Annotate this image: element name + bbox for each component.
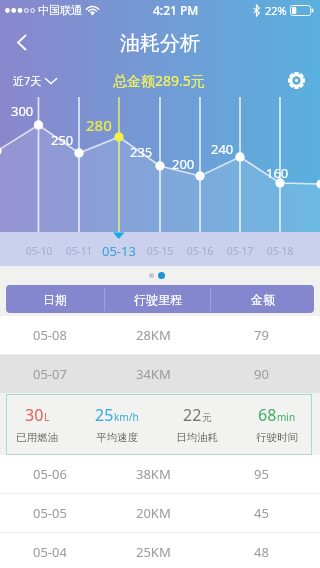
staticText: 中国联通 — [38, 3, 82, 17]
staticText: 95 — [254, 465, 269, 483]
staticText: 05-05 — [33, 504, 67, 522]
staticText: 05-08 — [33, 326, 67, 344]
staticText: 05-18 — [267, 244, 294, 258]
staticText: 05-06 — [33, 465, 67, 483]
staticText: min — [277, 410, 296, 424]
staticText: 38KM — [136, 465, 171, 483]
staticText: 05-17 — [227, 244, 254, 258]
staticText: 05-16 — [187, 244, 214, 258]
staticText: L — [44, 410, 50, 424]
staticText: 250 — [51, 131, 74, 149]
staticText: 68 — [258, 404, 277, 426]
staticText: 30 — [25, 404, 44, 426]
staticText: 已用燃油 — [16, 431, 58, 444]
button[interactable] — [6, 394, 312, 455]
staticText: 28KM — [136, 326, 171, 344]
staticText: 总金额289.5元 — [113, 71, 205, 90]
staticText: 25KM — [136, 543, 171, 561]
staticText: 48 — [254, 543, 269, 561]
staticText: 235 — [130, 143, 153, 161]
staticText: 日期 — [43, 292, 67, 307]
staticText: 日均油耗 — [176, 431, 218, 444]
staticText: 4:21 PM — [153, 2, 199, 18]
button[interactable]: 日期 — [6, 285, 314, 313]
button[interactable]: 05-06 — [0, 455, 320, 493]
staticText: 05-07 — [33, 365, 67, 383]
staticText: 90 — [254, 365, 269, 383]
staticText: 行驶里程 — [134, 292, 182, 307]
staticText: 05-10 — [26, 244, 53, 258]
staticText: 280 — [86, 115, 112, 135]
button[interactable]: 05-11 — [59, 232, 99, 266]
button[interactable]: 05-04 — [0, 533, 320, 568]
staticText: 240 — [211, 140, 234, 158]
button[interactable]: 05-07 — [0, 355, 320, 393]
button[interactable]: 05-18 — [260, 232, 300, 266]
staticText: 34KM — [136, 365, 171, 383]
button[interactable]: 05-05 — [0, 494, 320, 532]
staticText: 金额 — [251, 292, 275, 307]
staticText: 元 — [202, 411, 212, 424]
staticText: 79 — [254, 326, 269, 344]
staticText: km/h — [114, 410, 139, 424]
staticText: 油耗分析 — [120, 31, 200, 56]
button[interactable]: 05-10 — [19, 232, 59, 266]
staticText: 05-04 — [33, 543, 67, 561]
button[interactable]: 05-08 — [0, 316, 320, 354]
staticText: 22% — [265, 3, 287, 18]
staticText: 05-11 — [66, 244, 93, 258]
button[interactable]: 近7天 — [13, 73, 58, 88]
staticText: 行驶时间 — [256, 431, 298, 444]
staticText: 300 — [11, 102, 34, 120]
button[interactable]: 05-16 — [180, 232, 220, 266]
staticText: 05-15 — [147, 244, 174, 258]
staticText: 平均速度 — [96, 431, 138, 444]
button[interactable]: 05-13 — [99, 232, 139, 266]
button[interactable]: Back — [0, 20, 44, 64]
staticText: 近7天 — [13, 73, 42, 88]
staticText: 45 — [254, 504, 269, 522]
button[interactable]: Settings — [284, 68, 308, 92]
staticText: 25 — [95, 404, 114, 426]
button[interactable]: 05-15 — [140, 232, 180, 266]
staticText: 200 — [172, 155, 195, 173]
staticText: 22 — [183, 404, 202, 426]
staticText: 160 — [266, 164, 289, 182]
button[interactable]: 05-17 — [220, 232, 260, 266]
staticText: 05-13 — [102, 242, 136, 260]
staticText: 20KM — [136, 504, 171, 522]
